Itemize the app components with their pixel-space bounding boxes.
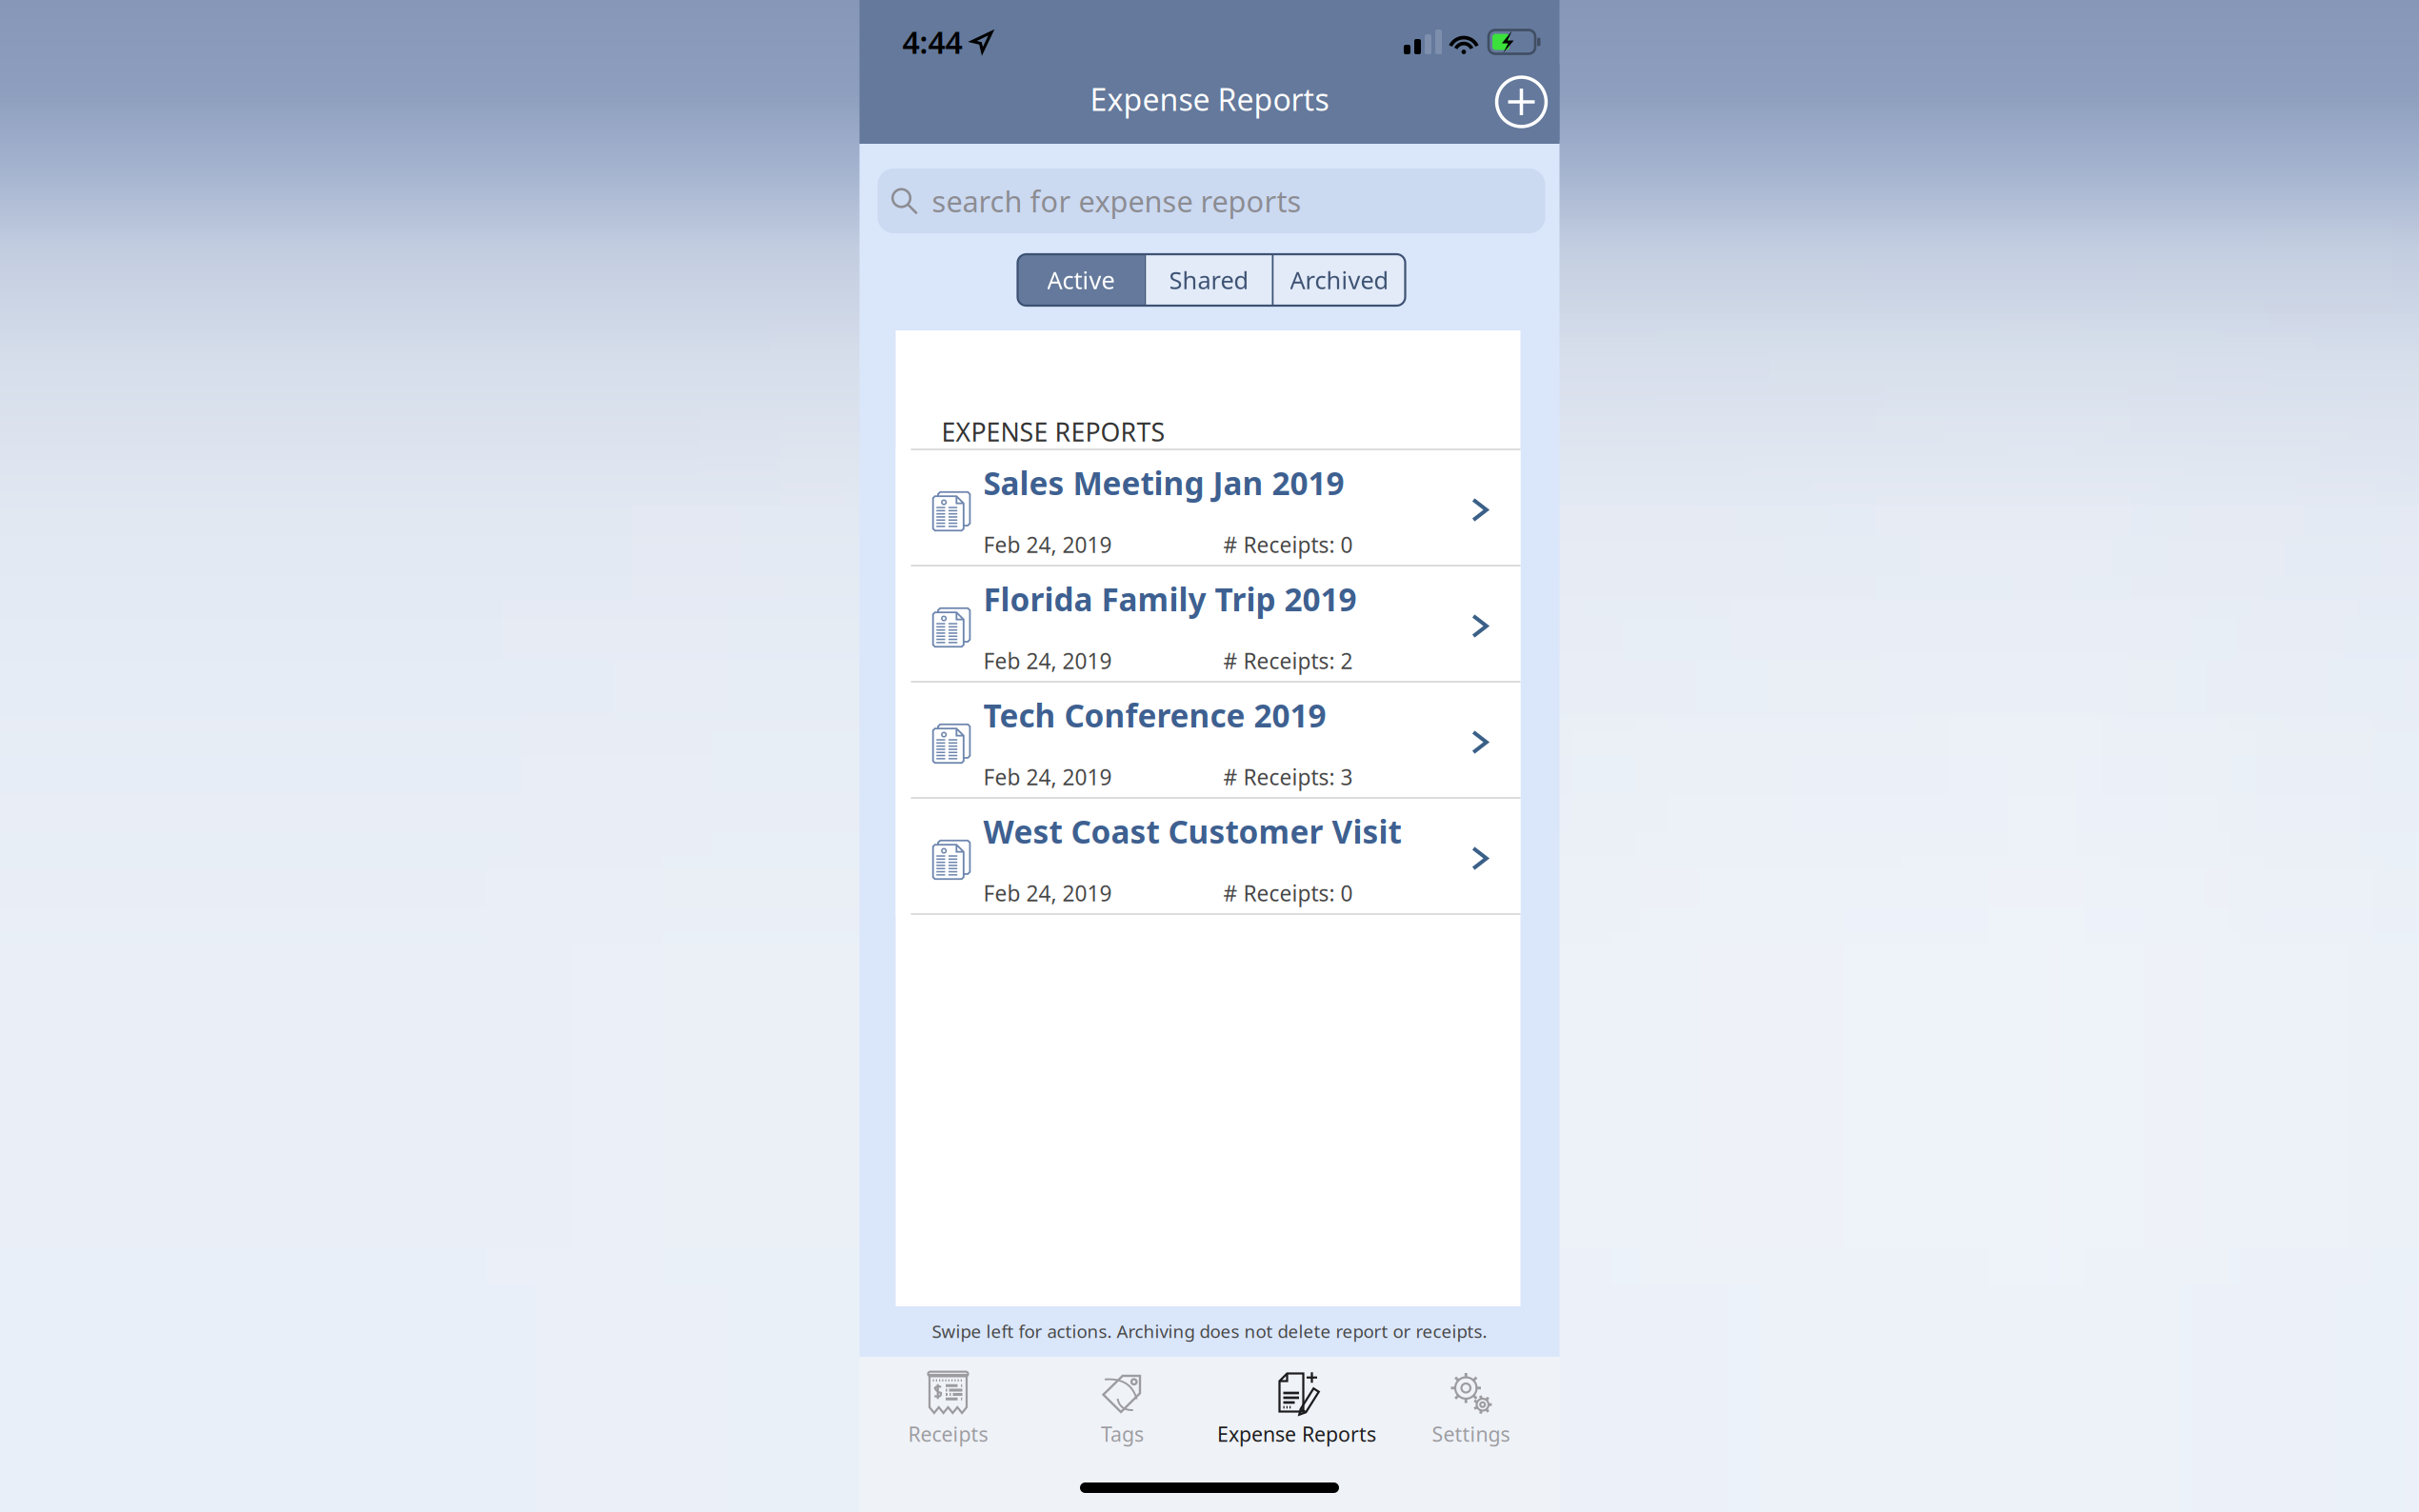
staticText: search for expense reports xyxy=(932,181,1301,220)
button[interactable]: Receipts xyxy=(861,1364,1035,1456)
button[interactable]: Tech Conference 2019 xyxy=(896,683,1520,797)
staticText: Tags xyxy=(1101,1420,1144,1447)
staticText: Active xyxy=(1047,264,1115,296)
staticText: Expense Reports xyxy=(1217,1420,1376,1447)
staticText: Feb 24, 2019 xyxy=(983,530,1112,559)
staticText: Feb 24, 2019 xyxy=(983,763,1112,791)
button[interactable]: Shared xyxy=(1146,254,1272,306)
staticText: Tech Conference 2019 xyxy=(983,694,1326,736)
button[interactable]: search for expense reports xyxy=(878,169,1545,233)
staticText: Expense Reports xyxy=(1090,79,1329,119)
staticText: Feb 24, 2019 xyxy=(983,879,1112,907)
button[interactable]: Tags xyxy=(1035,1364,1209,1456)
button[interactable]: Archived xyxy=(1274,254,1405,306)
staticText: Receipts xyxy=(908,1420,988,1447)
staticText: # Receipts: 2 xyxy=(1223,647,1353,675)
staticText: Feb 24, 2019 xyxy=(983,647,1112,675)
staticText: Swipe left for actions. Archiving does n… xyxy=(932,1319,1487,1343)
staticText: # Receipts: 0 xyxy=(1223,530,1353,559)
staticText: 4:44 xyxy=(902,22,962,62)
button[interactable]: Sales Meeting Jan 2019 xyxy=(896,450,1520,565)
staticText: Sales Meeting Jan 2019 xyxy=(983,462,1344,504)
button[interactable]: Settings xyxy=(1384,1364,1558,1456)
staticText: Archived xyxy=(1290,264,1389,296)
button[interactable]: Active xyxy=(1018,254,1144,306)
staticText: Settings xyxy=(1432,1420,1510,1447)
staticText: Florida Family Trip 2019 xyxy=(983,578,1357,620)
staticText: # Receipts: 3 xyxy=(1223,763,1353,791)
button[interactable]: Add expense report xyxy=(1483,64,1559,140)
staticText: # Receipts: 0 xyxy=(1223,879,1353,907)
staticText: EXPENSE REPORTS xyxy=(941,415,1165,448)
staticText: Shared xyxy=(1169,264,1249,296)
staticText: West Coast Customer Visit xyxy=(983,810,1401,852)
button[interactable]: Expense Reports xyxy=(1209,1364,1384,1456)
button[interactable]: Florida Family Trip 2019 xyxy=(896,567,1520,681)
button[interactable]: West Coast Customer Visit xyxy=(896,799,1520,913)
